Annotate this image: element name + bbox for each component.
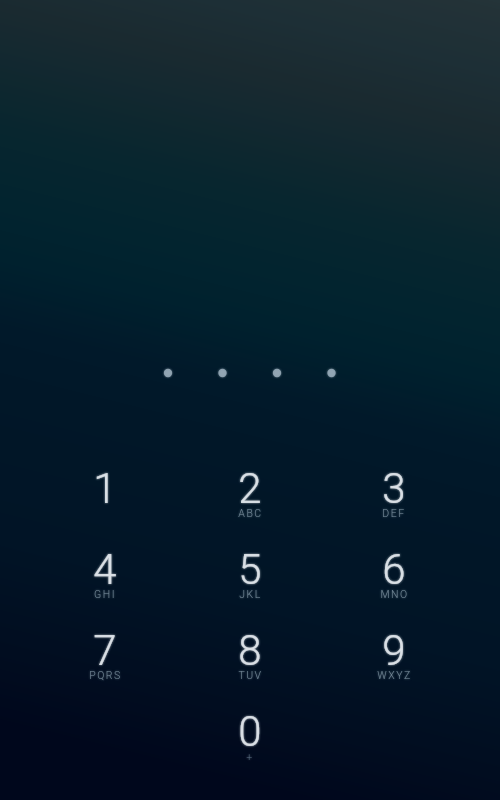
staticText: 8	[238, 626, 262, 675]
staticText: GHI	[94, 588, 116, 600]
staticText: ABC	[238, 507, 263, 519]
staticText: 1	[93, 464, 117, 513]
staticText: JKL	[239, 588, 262, 600]
button[interactable]: 5	[194, 537, 306, 609]
button[interactable]: 4	[49, 537, 161, 609]
staticText: 5	[238, 545, 262, 594]
button[interactable]: 0	[194, 699, 306, 771]
staticText: 5	[238, 545, 262, 594]
staticText: PQRS	[89, 669, 122, 681]
staticText: MNO	[380, 588, 409, 600]
staticText: 6	[382, 545, 406, 594]
staticText: 9	[382, 626, 406, 675]
staticText: 2	[238, 464, 262, 513]
button[interactable]: 7	[49, 618, 161, 690]
staticText: 8	[238, 626, 262, 675]
staticText: GHI	[94, 588, 116, 600]
staticText: 1	[93, 464, 117, 513]
staticText: 0	[238, 707, 262, 756]
staticText: WXYZ	[377, 669, 412, 681]
staticText: +	[246, 751, 254, 763]
staticText: TUV	[238, 669, 263, 681]
button[interactable]: 6	[338, 537, 450, 609]
button[interactable]: 9	[338, 618, 450, 690]
staticText: 4	[93, 545, 117, 594]
staticText: 4	[93, 545, 117, 594]
staticText: MNO	[380, 588, 409, 600]
staticText: 6	[382, 545, 406, 594]
staticText: 7	[93, 626, 117, 675]
staticText: PQRS	[89, 669, 122, 681]
button[interactable]: 2	[194, 456, 306, 528]
button[interactable]: 1	[49, 456, 161, 528]
staticText: +	[246, 751, 254, 763]
staticText: JKL	[239, 588, 262, 600]
staticText: 3	[382, 464, 406, 513]
staticText: ABC	[238, 507, 263, 519]
staticText: 3	[382, 464, 406, 513]
button[interactable]: 3	[338, 456, 450, 528]
button[interactable]: 8	[194, 618, 306, 690]
staticText: 7	[93, 626, 117, 675]
staticText: 9	[382, 626, 406, 675]
staticText: TUV	[238, 669, 263, 681]
staticText: 0	[238, 707, 262, 756]
staticText: DEF	[382, 507, 406, 519]
staticText: DEF	[382, 507, 406, 519]
staticText: WXYZ	[377, 669, 412, 681]
staticText: 2	[238, 464, 262, 513]
